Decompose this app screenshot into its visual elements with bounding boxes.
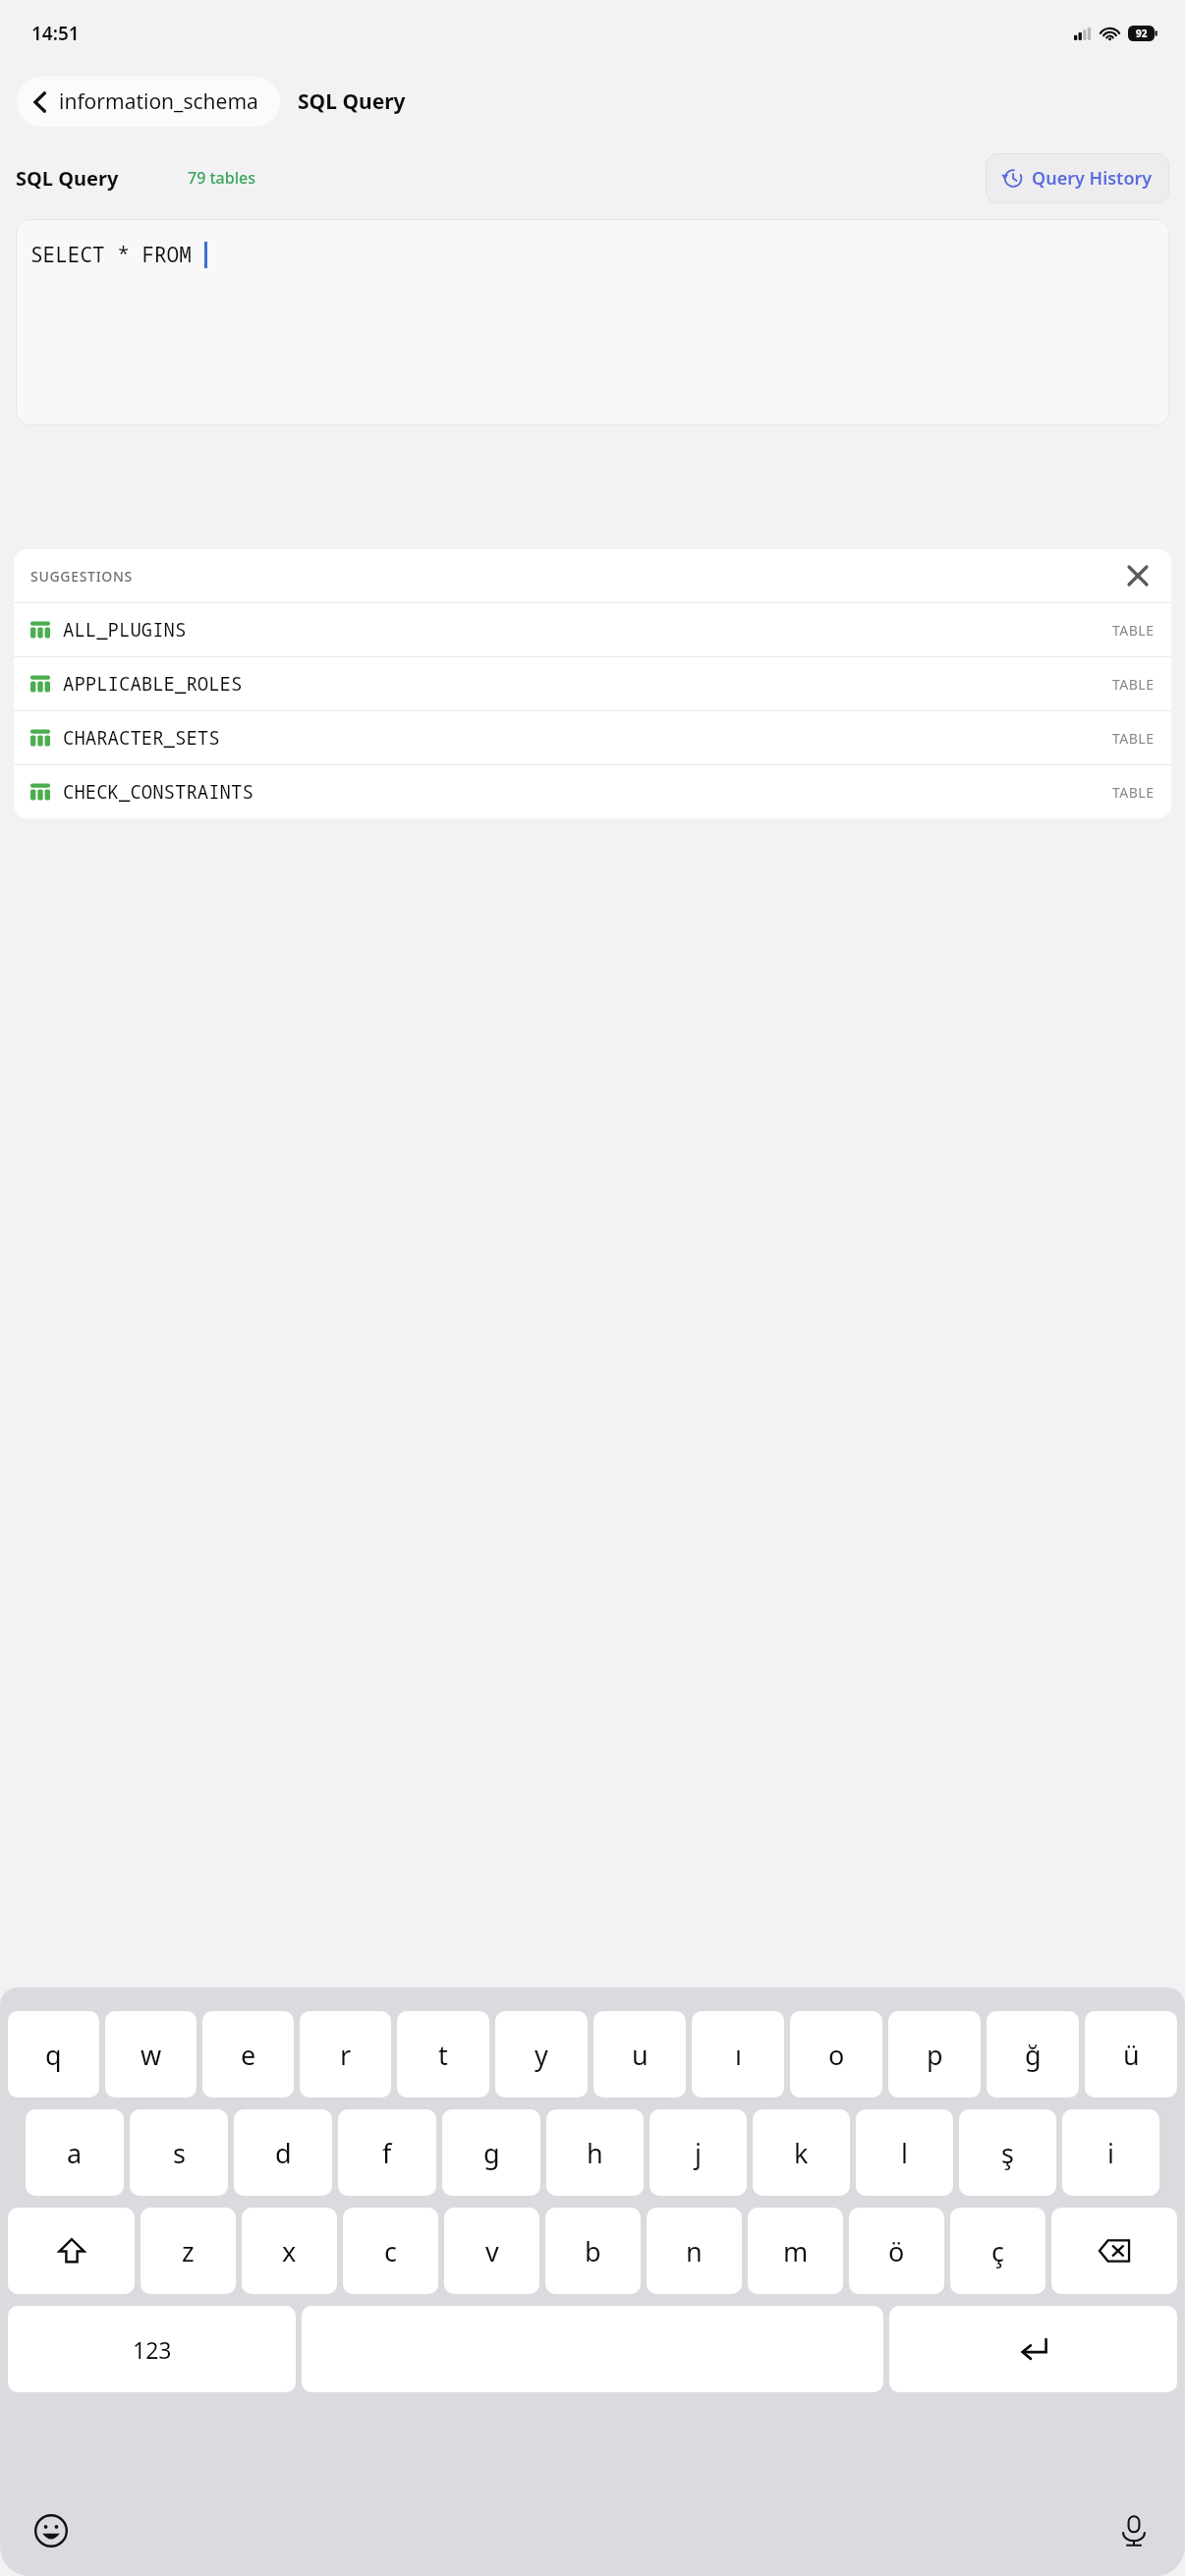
staticText: s (173, 2135, 186, 2171)
staticText: TABLE (1112, 783, 1155, 802)
staticText: SQL Query (16, 165, 119, 192)
button[interactable]: Close suggestions (1121, 559, 1155, 592)
staticText: TABLE (1112, 621, 1155, 640)
staticText: u (632, 2037, 649, 2073)
button[interactable]: y (495, 2011, 588, 2098)
button[interactable]: s (130, 2109, 228, 2196)
button[interactable]: information_schema (17, 77, 280, 127)
button[interactable]: ALL_PLUGINS (14, 603, 1171, 656)
button[interactable]: Voice input (1106, 2503, 1161, 2558)
button[interactable]: ü (1085, 2011, 1177, 2098)
staticText: o (828, 2037, 845, 2073)
staticText: SUGGESTIONS (30, 567, 133, 586)
button[interactable]: CHECK_CONSTRAINTS (14, 765, 1171, 818)
button[interactable]: l (856, 2109, 953, 2196)
staticText: i (1107, 2135, 1114, 2171)
staticText: v (485, 2233, 499, 2269)
staticText: c (384, 2233, 397, 2269)
staticText: CHARACTER_SETS (63, 725, 220, 751)
button[interactable]: q (8, 2011, 99, 2098)
staticText: r (340, 2037, 352, 2073)
staticText: q (45, 2037, 62, 2073)
staticText: y (535, 2037, 548, 2073)
staticText: n (686, 2233, 703, 2269)
staticText: APPLICABLE_ROLES (63, 671, 243, 697)
button[interactable]: x (242, 2208, 337, 2294)
staticText: h (587, 2135, 603, 2171)
button[interactable]: APPLICABLE_ROLES (14, 657, 1171, 710)
button[interactable]: r (300, 2011, 391, 2098)
staticText: ğ (1025, 2037, 1042, 2073)
button[interactable]: ğ (987, 2011, 1079, 2098)
staticText: k (794, 2135, 809, 2171)
button[interactable]: u (593, 2011, 686, 2098)
button[interactable]: v (444, 2208, 539, 2294)
staticText: x (282, 2233, 297, 2269)
button[interactable]: m (748, 2208, 843, 2294)
button[interactable]: Shift (8, 2208, 135, 2294)
staticText: 14:51 (31, 21, 80, 46)
staticText: z (182, 2233, 195, 2269)
staticText: d (275, 2135, 292, 2171)
button[interactable]: z (141, 2208, 236, 2294)
staticText: e (241, 2037, 256, 2073)
button[interactable]: t (397, 2011, 489, 2098)
button[interactable]: o (790, 2011, 882, 2098)
staticText: g (483, 2135, 500, 2171)
button[interactable]: j (649, 2109, 747, 2196)
staticText: information_schema (59, 87, 258, 116)
staticText: j (695, 2135, 702, 2171)
button[interactable]: 123 (8, 2306, 296, 2392)
staticText: TABLE (1112, 729, 1155, 748)
button[interactable]: g (442, 2109, 540, 2196)
button[interactable]: b (545, 2208, 641, 2294)
staticText: ALL_PLUGINS (63, 617, 187, 643)
staticText: SQL Query (298, 87, 406, 116)
staticText: w (141, 2037, 162, 2073)
button[interactable]: f (338, 2109, 436, 2196)
button[interactable]: d (234, 2109, 332, 2196)
button[interactable]: Emoji (24, 2503, 79, 2558)
staticText: 79 tables (188, 167, 255, 189)
staticText: ş (1001, 2135, 1014, 2171)
staticText: a (67, 2135, 83, 2171)
button[interactable]: w (105, 2011, 197, 2098)
staticText: ö (888, 2233, 905, 2269)
staticText: 123 (133, 2334, 172, 2365)
button[interactable]: ç (950, 2208, 1045, 2294)
button[interactable]: ö (849, 2208, 944, 2294)
staticText: TABLE (1112, 675, 1155, 694)
button[interactable]: ı (692, 2011, 784, 2098)
staticText: Query History (1032, 166, 1153, 191)
staticText: m (783, 2233, 809, 2269)
button[interactable]: ş (959, 2109, 1056, 2196)
staticText: l (901, 2135, 908, 2171)
button[interactable]: h (546, 2109, 644, 2196)
staticText: p (927, 2037, 943, 2073)
button[interactable]: i (1062, 2109, 1159, 2196)
staticText: f (382, 2135, 392, 2171)
staticText: ü (1123, 2037, 1140, 2073)
button[interactable]: a (26, 2109, 124, 2196)
button[interactable]: e (202, 2011, 294, 2098)
button[interactable]: SELECT * FROM (16, 219, 1169, 425)
staticText: CHECK_CONSTRAINTS (63, 779, 254, 805)
staticText: t (438, 2037, 448, 2073)
button[interactable]: p (888, 2011, 981, 2098)
button[interactable]: k (753, 2109, 850, 2196)
button[interactable]: Query History (986, 153, 1169, 203)
button[interactable]: c (343, 2208, 438, 2294)
staticText: ç (991, 2233, 1004, 2269)
button[interactable]: Return (889, 2306, 1177, 2392)
staticText: 92 (1136, 27, 1148, 40)
staticText: SELECT * FROM (30, 241, 204, 269)
staticText: ı (735, 2037, 742, 2073)
button[interactable]: Backspace (1051, 2208, 1177, 2294)
button[interactable]: CHARACTER_SETS (14, 711, 1171, 764)
staticText: b (585, 2233, 601, 2269)
button[interactable]: n (647, 2208, 742, 2294)
